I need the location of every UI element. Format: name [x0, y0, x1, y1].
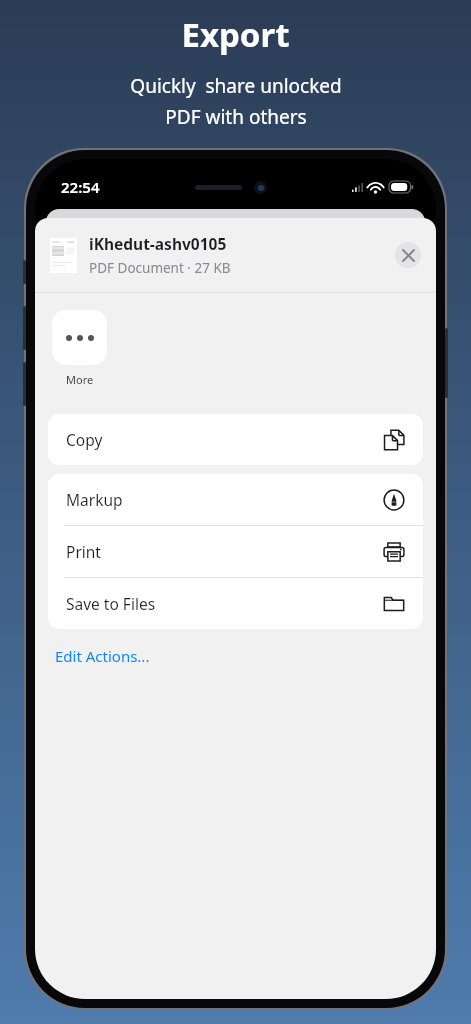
staticText: Print [66, 541, 383, 562]
staticText: Edit Actions... [55, 646, 150, 666]
button[interactable]: Markup [48, 474, 423, 525]
staticText: PDF with others [165, 104, 307, 130]
button[interactable]: Edit Actions... [35, 642, 170, 670]
staticText: PDF Document · 27 KB [89, 259, 231, 277]
staticText: Export [181, 12, 290, 57]
button[interactable]: Close [395, 242, 421, 268]
staticText: iKhedut-ashv0105 [89, 233, 227, 254]
staticText: More [66, 372, 94, 387]
staticText: 22:54 [61, 177, 100, 197]
button[interactable]: Print [48, 526, 423, 577]
button[interactable]: Copy [48, 414, 423, 465]
staticText: Save to Files [66, 593, 383, 614]
staticText: Copy [66, 429, 383, 450]
staticText: Quickly share unlocked [130, 73, 342, 99]
button[interactable]: Save to Files [48, 578, 423, 629]
button[interactable]: More [52, 310, 107, 365]
staticText: Markup [66, 489, 383, 510]
